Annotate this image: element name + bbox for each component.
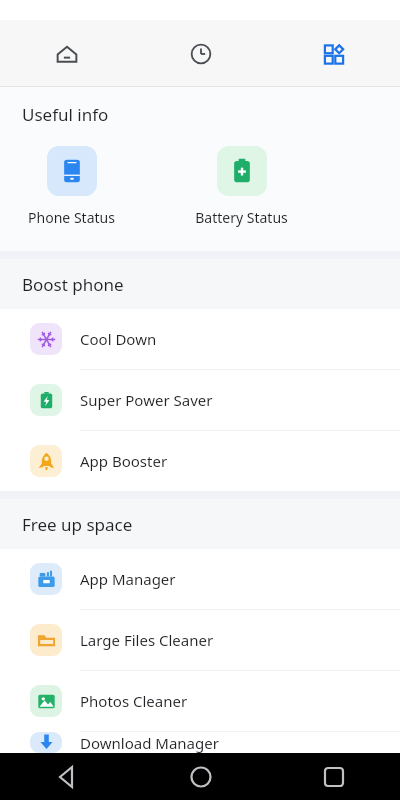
button[interactable]: Cool Down [0,309,400,369]
staticText: Battery Status [195,208,288,227]
button[interactable]: App Booster [0,431,400,491]
button[interactable]: Recent [134,20,267,87]
button[interactable]: Back [0,753,134,800]
staticText: Large Files Cleaner [80,630,214,650]
button[interactable]: App Manager [0,549,400,609]
staticText: Download Manager [80,733,219,753]
staticText: App Booster [80,451,168,471]
staticText: Useful info [22,103,109,126]
button[interactable]: Home [0,20,134,87]
button[interactable]: Battery Status [191,146,292,227]
button[interactable]: Home [134,753,267,800]
staticText: Super Power Saver [80,390,213,410]
staticText: Phone Status [28,208,115,227]
button[interactable]: Recents [267,753,400,800]
staticText: Cool Down [80,329,157,349]
button[interactable]: Super Power Saver [0,370,400,430]
button[interactable]: Download Manager [0,732,400,753]
staticText: Free up space [22,513,133,536]
button[interactable]: Large Files Cleaner [0,610,400,670]
staticText: Photos Cleaner [80,691,188,711]
button[interactable]: Phone Status [24,146,119,227]
button[interactable]: Tools [267,20,400,87]
button[interactable]: Photos Cleaner [0,671,400,731]
staticText: App Manager [80,569,176,589]
staticText: Boost phone [22,273,124,296]
